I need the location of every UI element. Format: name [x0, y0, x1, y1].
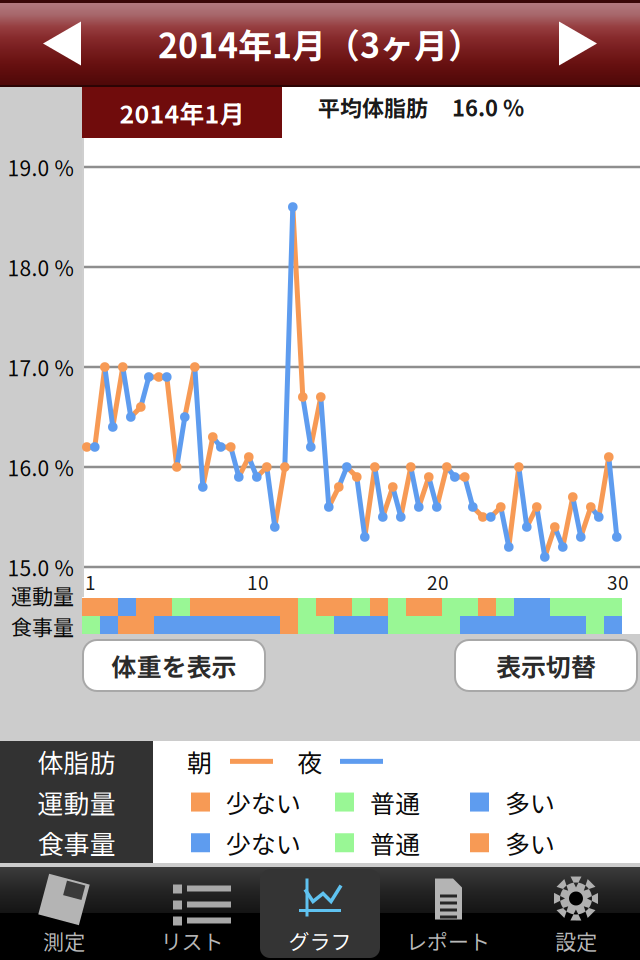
staticText: 表示切替 — [496, 647, 596, 684]
staticText: 体重を表示 — [111, 647, 236, 684]
staticText: 測定 — [43, 925, 85, 956]
staticText: 多い — [505, 784, 555, 820]
staticText: 1 — [85, 568, 96, 595]
staticText: レポート — [406, 925, 490, 956]
button[interactable]: レポート — [384, 867, 512, 960]
button[interactable]: 測定 — [0, 867, 128, 960]
staticText: 食事量 — [11, 611, 74, 641]
button[interactable]: 表示切替 — [455, 640, 637, 691]
staticText: 朝 — [187, 743, 212, 779]
staticText: 2014年1月 — [119, 94, 244, 131]
staticText: 10 — [247, 568, 269, 595]
staticText: 夜 — [297, 743, 322, 779]
staticText: 運動量 — [37, 783, 115, 821]
staticText: 16.0 % — [7, 452, 73, 482]
staticText: 設定 — [555, 925, 597, 956]
staticText: 16.0 % — [452, 91, 524, 123]
staticText: 少ない — [226, 825, 301, 861]
button[interactable]: 体重を表示 — [83, 640, 265, 691]
staticText: 体脂肪 — [37, 742, 115, 780]
staticText: 17.0 % — [7, 352, 73, 382]
staticText: 19.0 % — [7, 152, 73, 182]
staticText: 15.0 % — [7, 552, 73, 582]
button[interactable]: 前の期間 — [0, 3, 124, 83]
staticText: 運動量 — [11, 580, 74, 610]
staticText: 2014年1月（3ヶ月） — [158, 19, 482, 68]
staticText: 少ない — [226, 784, 301, 820]
button[interactable]: 設定 — [512, 867, 640, 960]
staticText: 食事量 — [37, 824, 115, 861]
button[interactable]: 次の期間 — [516, 3, 640, 83]
staticText: 普通 — [370, 784, 420, 820]
staticText: グラフ — [288, 925, 351, 956]
staticText: 30 — [607, 568, 629, 595]
staticText: 18.0 % — [7, 252, 73, 282]
button[interactable]: リスト — [128, 867, 256, 960]
staticText: 多い — [505, 825, 555, 861]
staticText: リスト — [160, 925, 223, 956]
staticText: 20 — [427, 568, 449, 595]
staticText: 普通 — [370, 825, 420, 861]
staticText: 平均体脂肪 — [318, 91, 428, 123]
button[interactable]: グラフ — [256, 867, 384, 960]
